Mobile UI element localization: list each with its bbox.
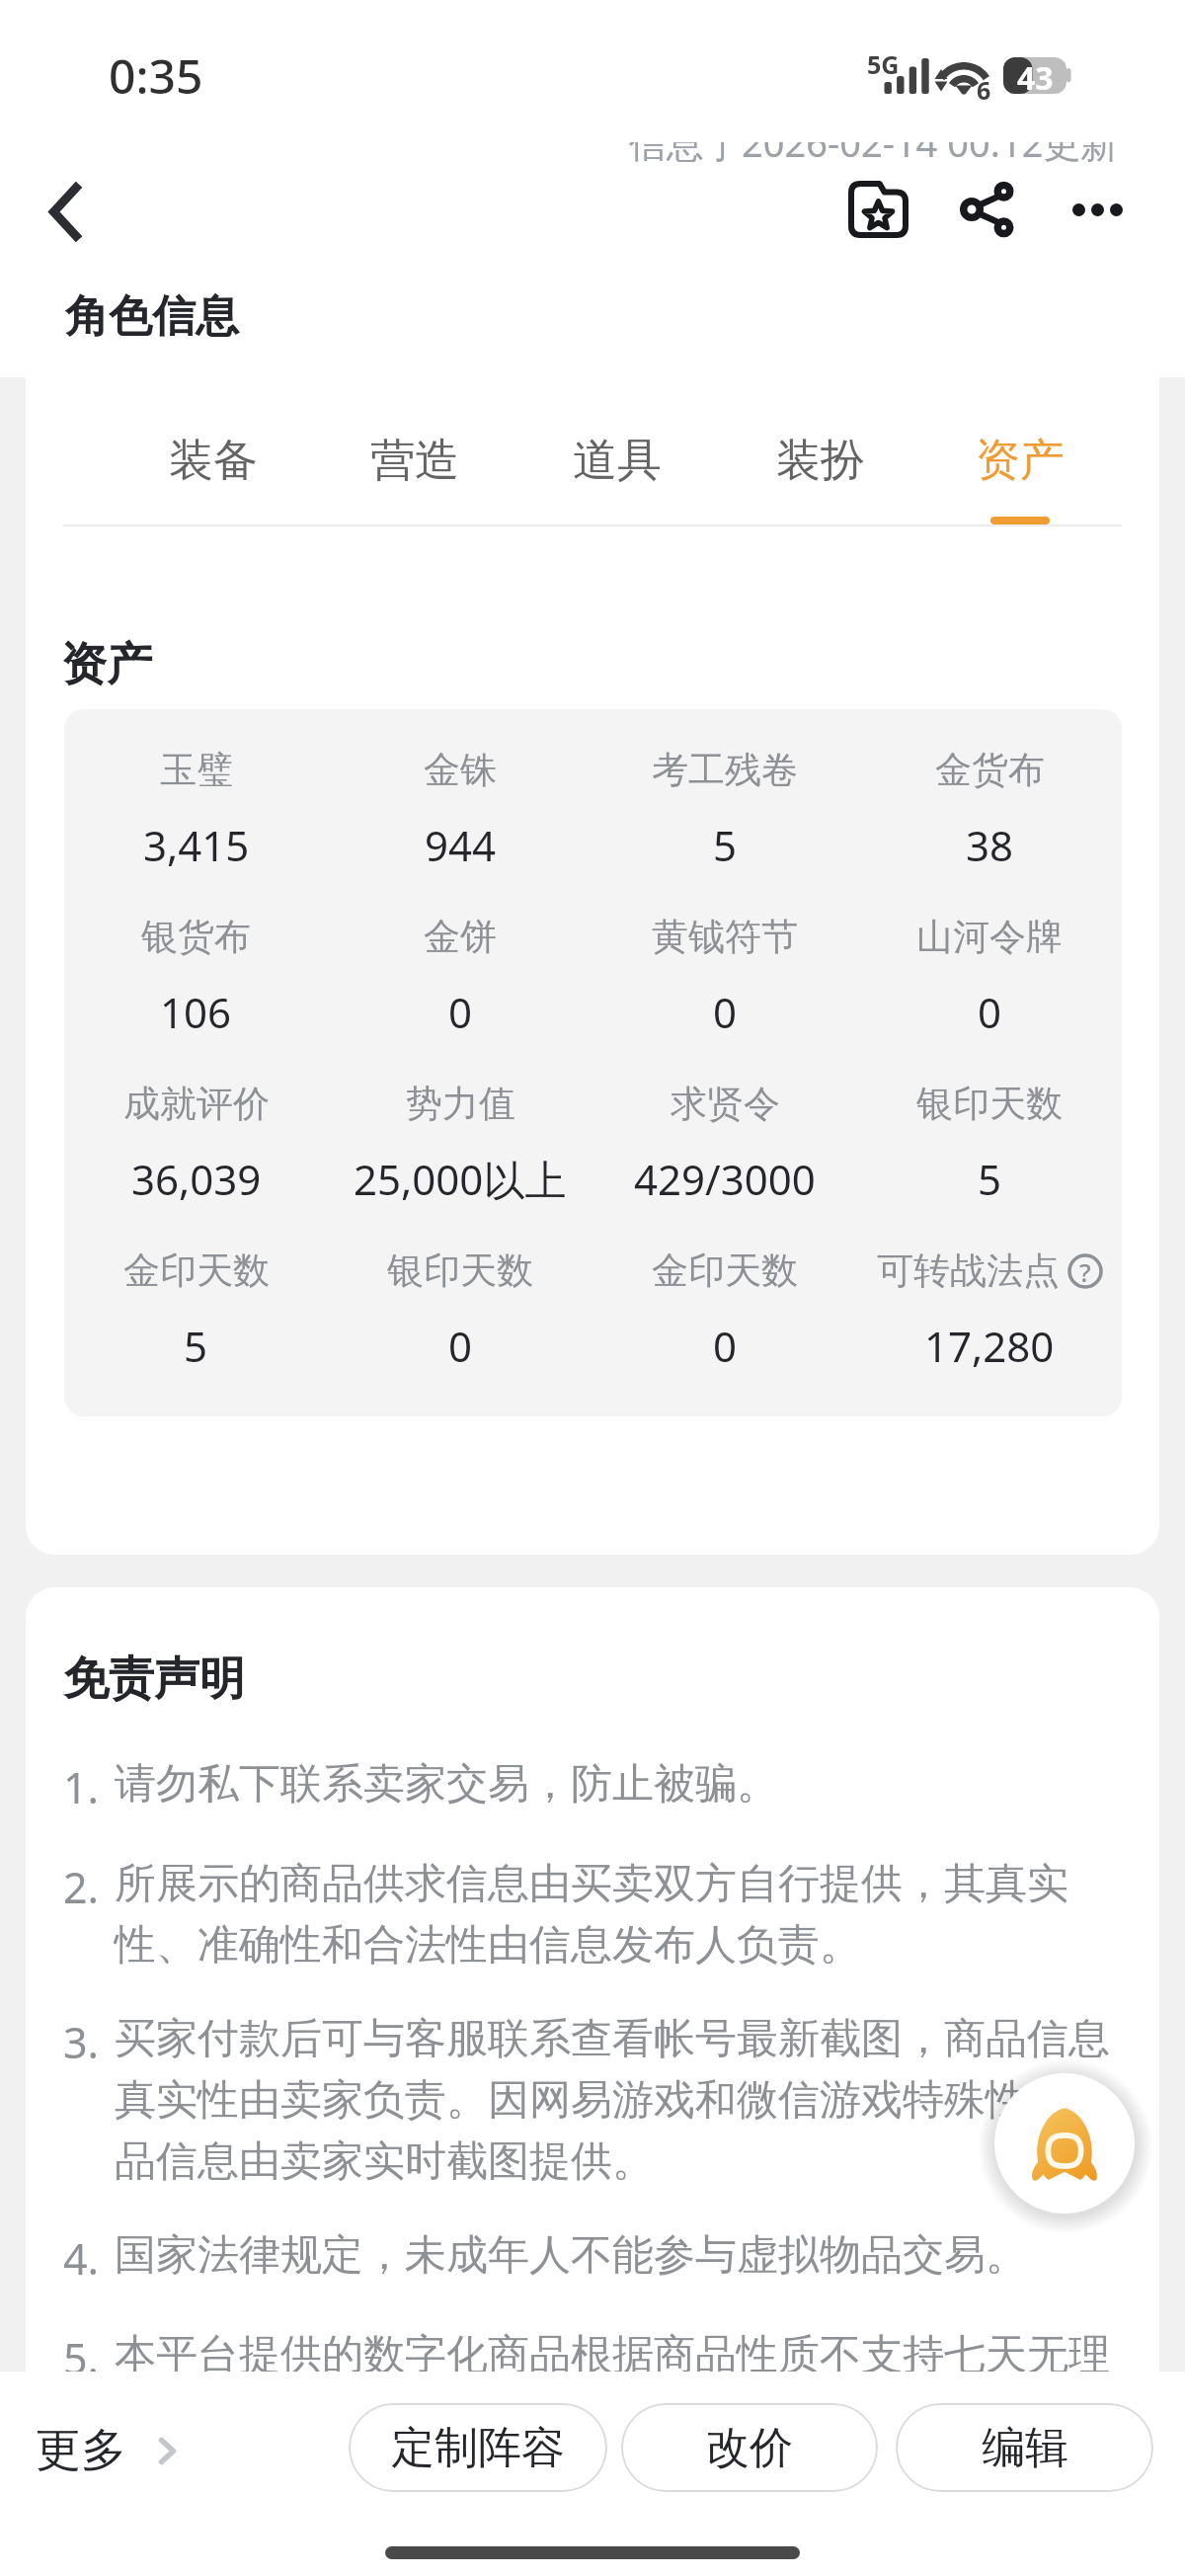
staticText: 成就评价 [123, 1081, 270, 1127]
staticText: 5 [184, 1318, 208, 1374]
staticText: 5 [713, 817, 738, 873]
staticText: 38 [966, 817, 1014, 873]
button[interactable]: 改价 [621, 2403, 878, 2492]
button[interactable]: 道具 [538, 377, 696, 525]
staticText: 国家法律规定，未成年人不能参与虚拟物品交易。 [115, 2229, 1120, 2282]
staticText: 信息于2026-02-14 00:12更新 [629, 117, 1119, 168]
button[interactable]: 装备 [134, 377, 292, 525]
staticText: 所展示的商品供求信息由买卖双方自行提供，其真实 性、准确性和合法性由信息发布人负… [115, 1858, 1120, 1972]
staticText: 金饼 [424, 914, 497, 960]
staticText: 金印天数 [123, 1248, 270, 1294]
button[interactable]: Share [936, 159, 1037, 260]
staticText: 4. [63, 2229, 115, 2288]
staticText: 0 [448, 984, 473, 1040]
staticText: 道具 [573, 433, 662, 489]
staticText: 36,039 [131, 1151, 262, 1207]
staticText: 更多 [36, 2422, 126, 2479]
staticText: 山河令牌 [916, 914, 1063, 960]
staticText: 25,000以上 [354, 1151, 567, 1207]
staticText: 银货布 [141, 914, 251, 960]
staticText: 金铢 [424, 747, 497, 793]
staticText: 5G [867, 47, 900, 81]
staticText: 装备 [169, 433, 258, 489]
staticText: 营造 [370, 433, 459, 489]
staticText: 可转战法点 [877, 1248, 1060, 1294]
staticText: 43 [1017, 56, 1054, 94]
staticText: 3,415 [143, 817, 250, 873]
staticText: 金货布 [935, 747, 1045, 793]
staticText: 银印天数 [916, 1081, 1063, 1127]
staticText: 0 [978, 984, 1002, 1040]
staticText: 角色信息 [65, 289, 239, 344]
staticText: 免责声明 [63, 1650, 245, 1708]
staticText: 6 [977, 73, 991, 107]
staticText: 编辑 [982, 2421, 1068, 2475]
button[interactable]: 更多 [36, 2422, 176, 2479]
button[interactable]: 定制阵容 [349, 2403, 607, 2492]
staticText: 本平台提供的数字化商品根据商品性质不支持七天无理 由退换货。 [115, 2329, 1120, 2372]
staticText: 考工残卷 [652, 747, 798, 793]
staticText: 资产 [976, 433, 1065, 489]
staticText: 求贤令 [671, 1081, 780, 1127]
staticText: 银印天数 [387, 1248, 533, 1294]
staticText: 0 [713, 984, 738, 1040]
staticText: 定制阵容 [391, 2421, 565, 2475]
staticText: 金印天数 [652, 1248, 798, 1294]
staticText: ? [1079, 1254, 1091, 1289]
staticText: 5. [63, 2329, 115, 2372]
staticText: 黄钺符节 [652, 914, 798, 960]
button[interactable]: 装扮 [742, 377, 900, 525]
staticText: 1. [63, 1758, 115, 1816]
staticText: 0 [713, 1318, 738, 1374]
staticText: 944 [425, 817, 497, 873]
button[interactable]: 营造 [336, 377, 494, 525]
button[interactable]: 资产 [941, 377, 1099, 525]
staticText: 玉璧 [160, 747, 233, 793]
staticText: 0:35 [109, 43, 203, 108]
button[interactable]: Favourite [828, 159, 928, 260]
staticText: 429/3000 [634, 1151, 816, 1207]
staticText: 改价 [706, 2421, 793, 2475]
staticText: 17,280 [924, 1318, 1055, 1374]
staticText: 106 [160, 984, 232, 1040]
button[interactable]: Back [12, 159, 118, 265]
button[interactable]: More options [1047, 159, 1147, 260]
button[interactable]: Boost [994, 2073, 1135, 2214]
staticText: 5 [978, 1151, 1002, 1207]
staticText: 势力值 [406, 1081, 515, 1127]
staticText: 买家付款后可与客服联系查看帐号最新截图，商品信息 真实性由卖家负责。因网易游戏和… [115, 2013, 1120, 2188]
staticText: 装扮 [776, 433, 865, 489]
staticText: 资产 [61, 636, 152, 693]
staticText: 2. [63, 1858, 115, 1916]
staticText: 3. [63, 2013, 115, 2071]
button[interactable]: 编辑 [896, 2403, 1153, 2492]
staticText: 0 [448, 1318, 473, 1374]
staticText: 请勿私下联系卖家交易，防止被骗。 [115, 1758, 1120, 1811]
